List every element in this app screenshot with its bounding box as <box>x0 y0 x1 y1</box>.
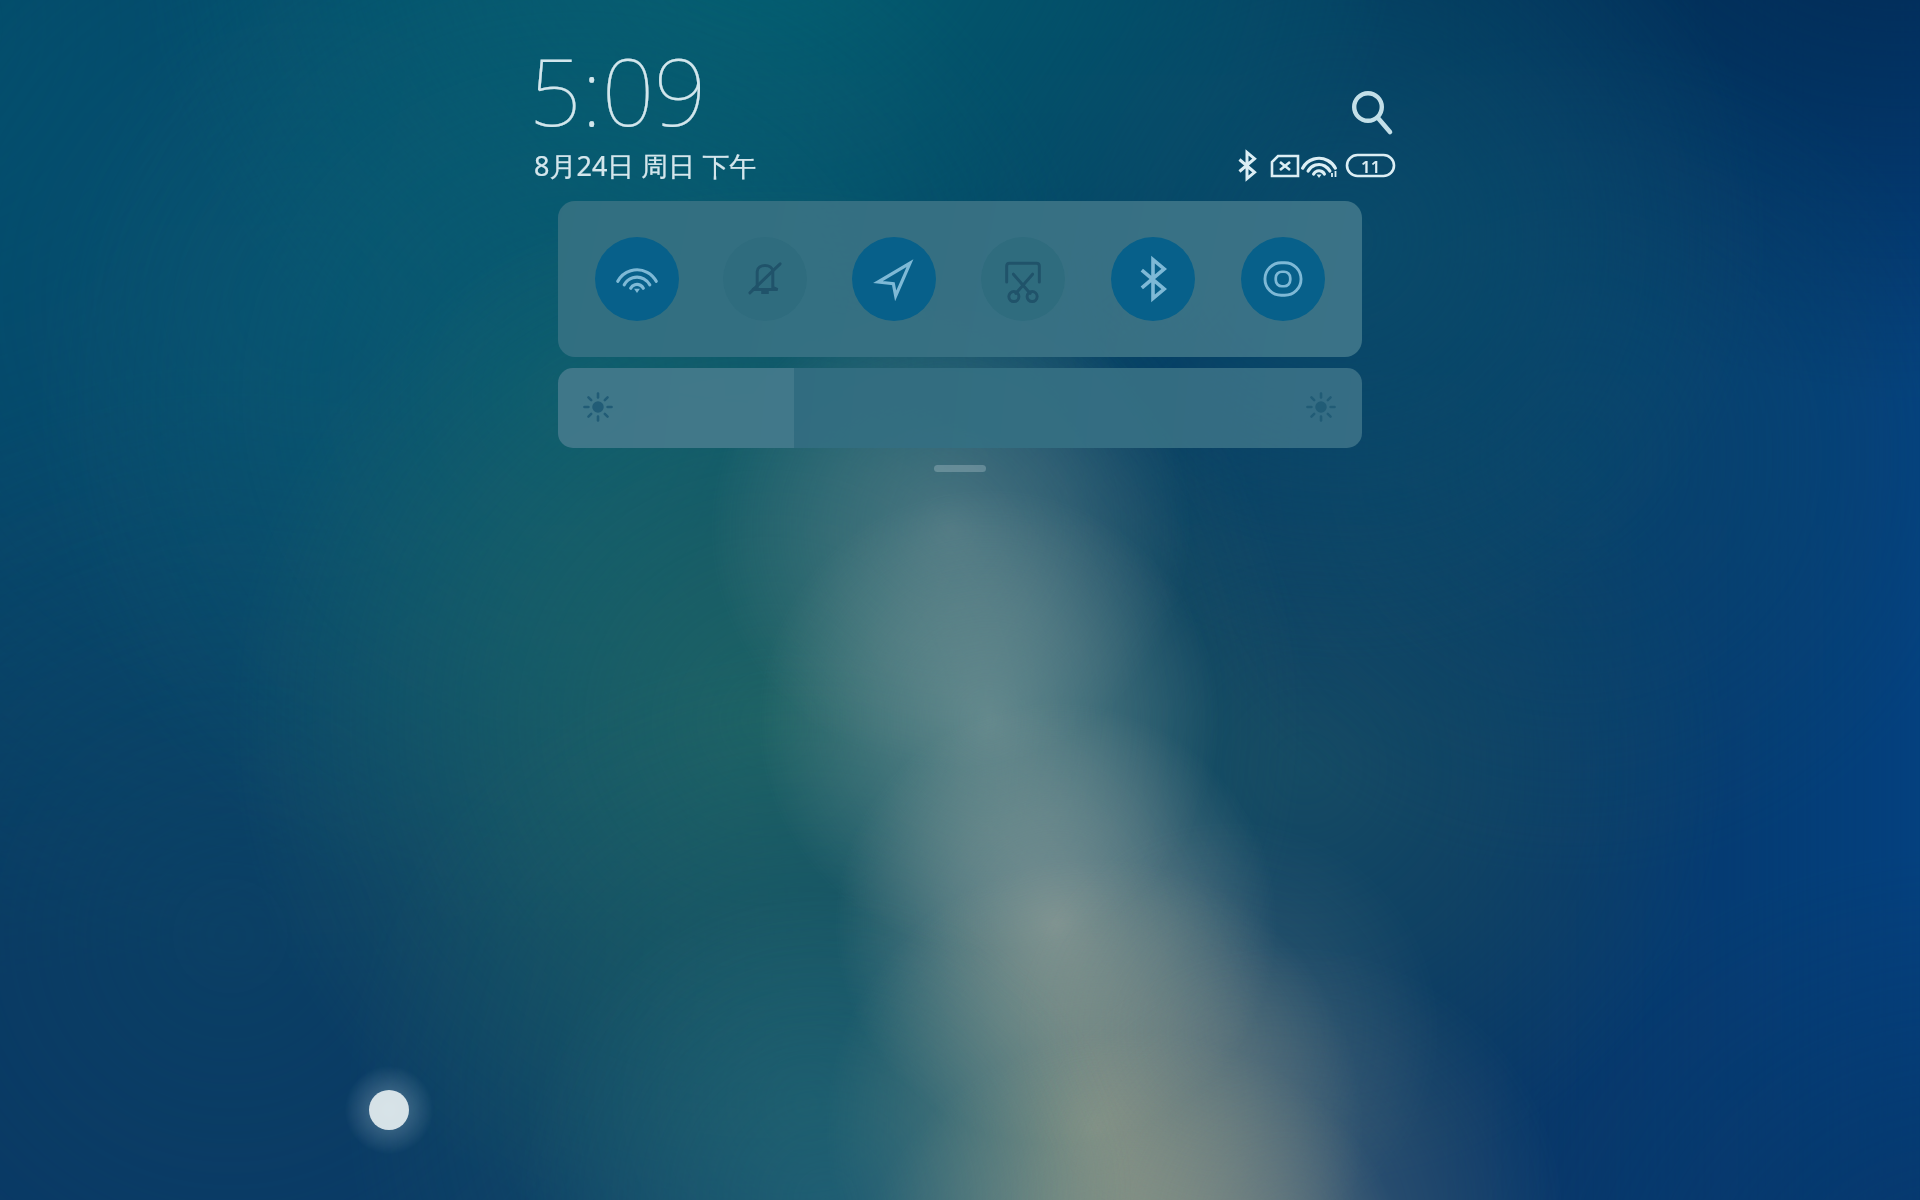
button[interactable]: Do not disturb <box>723 237 807 321</box>
staticText: 11 <box>1361 155 1381 176</box>
staticText: 8月24日 周日 下午 <box>534 147 757 184</box>
button[interactable]: Location <box>852 237 936 321</box>
button[interactable]: Bluetooth <box>1111 237 1195 321</box>
button[interactable]: Screenshot <box>981 237 1065 321</box>
button[interactable]: Expand <box>934 465 986 472</box>
button[interactable]: Brightness <box>558 368 1362 448</box>
button[interactable]: Wi-Fi <box>595 237 679 321</box>
button[interactable]: Reading mode <box>1241 237 1325 321</box>
button[interactable]: Search <box>1340 80 1400 140</box>
staticText: 5:09 <box>529 28 707 153</box>
